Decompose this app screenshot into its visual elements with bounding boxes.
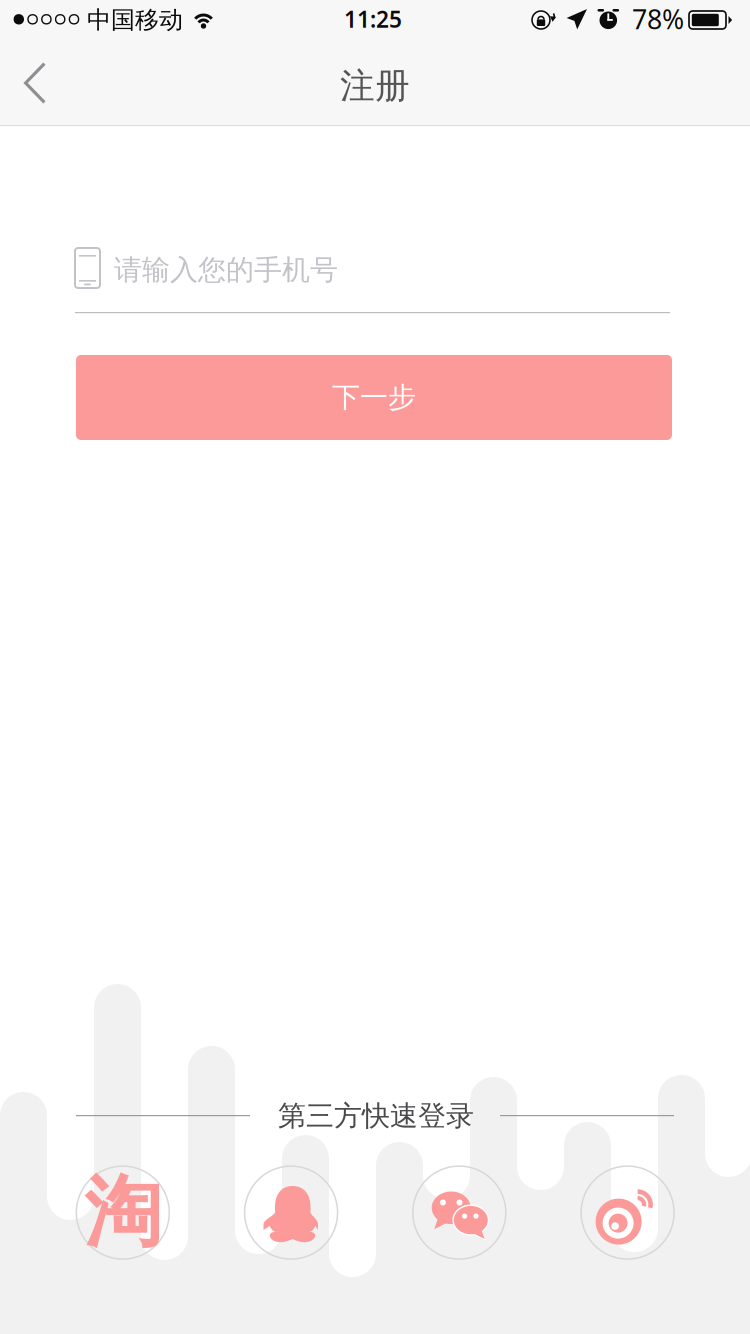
staticText: 11:25 [344,4,402,34]
button[interactable]: Weibo [581,1166,674,1259]
button[interactable]: 下一步 [76,355,672,440]
button[interactable]: QQ [245,1166,338,1259]
staticText: 注册 [340,65,410,107]
staticText: 78% [632,1,684,37]
staticText: 第三方快速登录 [278,1099,474,1133]
staticText: 请输入您的手机号 [114,253,338,287]
button[interactable]: Taobao [76,1166,169,1259]
button[interactable]: WeChat [413,1166,506,1259]
button[interactable]: Back [4,47,76,119]
staticText: 下一步 [332,380,416,415]
staticText: 中国移动 [87,5,183,35]
staticText: 淘 [84,1165,161,1260]
